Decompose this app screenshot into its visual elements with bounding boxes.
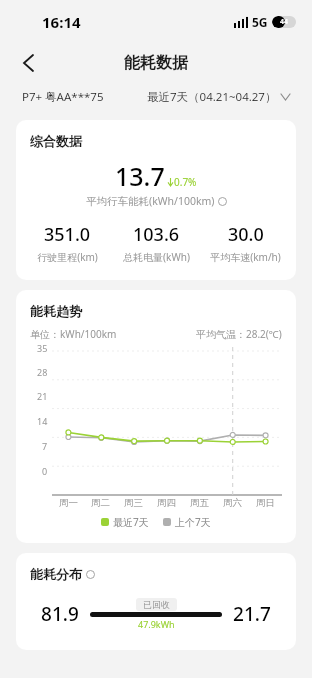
staticText: 7: [42, 440, 48, 452]
staticText: 0.7%: [174, 175, 197, 189]
staticText: 能耗数据: [124, 53, 188, 73]
staticText: 周六: [223, 497, 242, 509]
staticText: 21: [37, 390, 48, 402]
staticText: 351.0: [44, 222, 91, 247]
staticText: 81.9: [30, 601, 90, 627]
staticText: 周日: [256, 497, 275, 509]
staticText: 0: [42, 465, 48, 477]
staticText: 14: [37, 415, 48, 427]
staticText: 周二: [91, 497, 110, 509]
staticText: 13.7: [115, 159, 165, 193]
staticText: 周四: [157, 497, 176, 509]
staticText: 平均车速(km/h): [210, 250, 281, 264]
staticText: 行驶里程(km): [37, 250, 98, 264]
staticText: 103.6: [133, 222, 180, 247]
staticText: 35: [37, 342, 48, 354]
staticText: 16:14: [42, 12, 81, 32]
staticText: 周一: [59, 497, 78, 509]
staticText: 上个7天: [175, 515, 211, 529]
staticText: 47.9kWh: [138, 618, 175, 630]
staticText: 30.0: [228, 222, 264, 247]
staticText: 5G: [252, 14, 268, 30]
staticText: 最近7天（04.21~04.27）: [147, 89, 277, 105]
staticText: 单位：kWh/100km: [30, 327, 117, 341]
staticText: 能耗趋势: [30, 303, 82, 319]
staticText: 总耗电量(kWh): [123, 250, 190, 264]
staticText: 平均行车能耗(kWh/100km): [86, 194, 215, 208]
button[interactable]: 最近7天（04.21~04.27）: [147, 89, 290, 105]
staticText: 综合数据: [30, 133, 82, 149]
staticText: 能耗分布: [30, 566, 82, 582]
staticText: 44: [280, 17, 289, 27]
button[interactable]: P7+ 粤AA***75: [22, 89, 104, 105]
staticText: 平均气温：28.2(℃): [196, 327, 282, 341]
staticText: 最近7天: [113, 515, 149, 529]
staticText: 周三: [124, 497, 143, 509]
staticText: 28: [37, 366, 48, 378]
staticText: 周五: [190, 497, 209, 509]
staticText: 已回收: [143, 599, 170, 610]
staticText: 21.7: [222, 601, 282, 627]
button[interactable]: Back: [10, 45, 46, 81]
